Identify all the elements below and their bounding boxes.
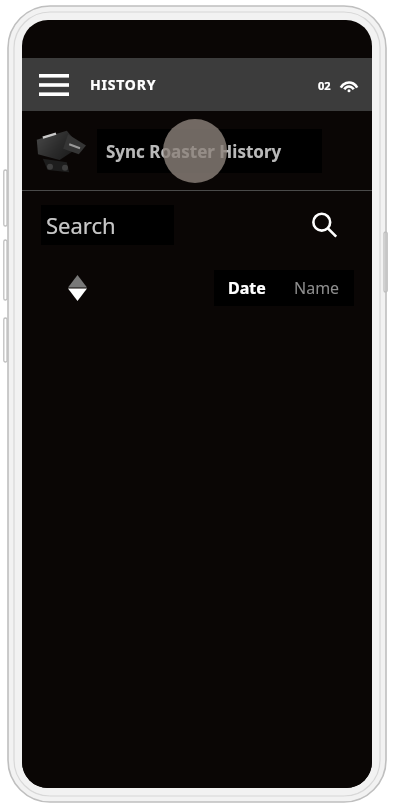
button[interactable]: Wi-Fi connection status <box>338 74 360 96</box>
staticText: Name <box>294 277 340 299</box>
button[interactable]: Search <box>302 203 346 247</box>
button[interactable]: Date <box>214 270 280 306</box>
staticText: Search <box>46 210 116 240</box>
button[interactable]: Toggle sort order <box>60 271 94 305</box>
button[interactable]: Sync Roaster History <box>22 111 372 190</box>
staticText: 02 <box>318 78 331 93</box>
staticText: HISTORY <box>90 75 157 94</box>
staticText: Sync Roaster History <box>106 140 282 163</box>
button[interactable]: Search <box>41 205 174 245</box>
staticText: Date <box>228 277 266 299</box>
button[interactable]: Name <box>280 270 354 306</box>
button[interactable]: Open navigation menu <box>30 61 78 109</box>
